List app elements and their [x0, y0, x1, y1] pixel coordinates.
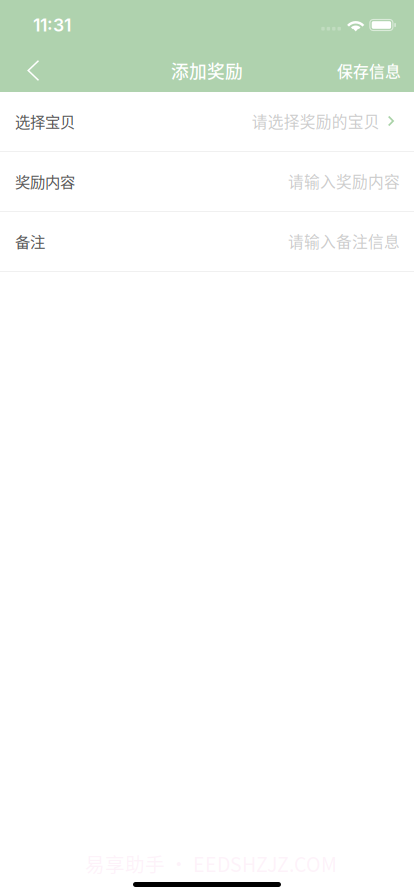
- staticText: 请输入备注信息: [288, 230, 400, 252]
- staticText: 备注: [15, 230, 45, 252]
- staticText: 请选择奖励的宝贝: [252, 110, 380, 132]
- button[interactable]: 保存信息: [324, 47, 414, 91]
- staticText: 奖励内容: [15, 170, 75, 192]
- staticText: 请输入奖励内容: [288, 170, 400, 192]
- button[interactable]: 备注: [0, 212, 414, 272]
- button[interactable]: 选择宝贝: [0, 92, 414, 152]
- staticText: 11:31: [33, 14, 71, 36]
- button[interactable]: Back: [9, 47, 55, 91]
- staticText: 添加奖励: [171, 58, 243, 83]
- staticText: 保存信息: [337, 59, 401, 82]
- staticText: 易享助手 · EEDSHZJZ.COM: [85, 849, 337, 878]
- staticText: 选择宝贝: [15, 110, 75, 132]
- button[interactable]: 奖励内容: [0, 152, 414, 212]
